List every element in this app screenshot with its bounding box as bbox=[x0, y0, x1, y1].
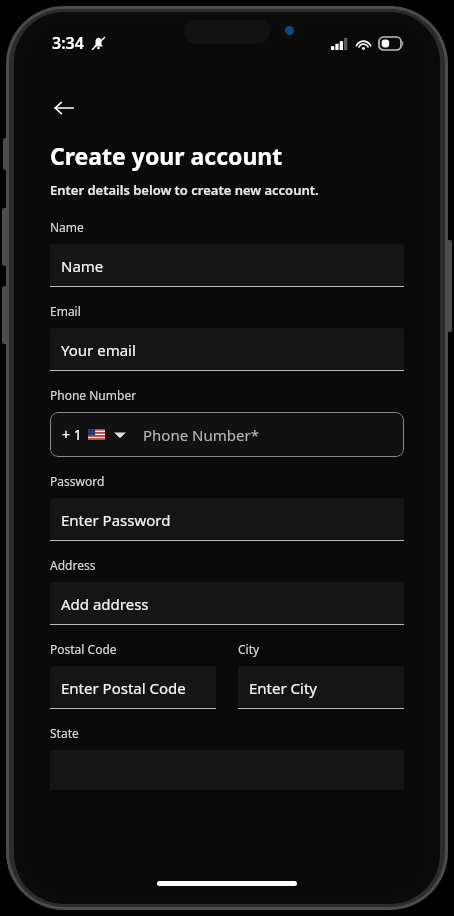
staticText: Password bbox=[50, 473, 105, 489]
staticText: Postal Code bbox=[50, 641, 117, 657]
staticText: Enter details below to create new accoun… bbox=[50, 181, 319, 199]
staticText: Your email bbox=[61, 340, 136, 360]
staticText: Add address bbox=[61, 594, 149, 614]
staticText: Address bbox=[50, 557, 96, 573]
staticText: Phone Number bbox=[50, 387, 137, 403]
button[interactable]: Back bbox=[42, 86, 86, 130]
staticText: Name bbox=[61, 256, 104, 276]
staticText: Phone Number* bbox=[143, 425, 259, 445]
staticText: 3:34 bbox=[52, 32, 84, 54]
button[interactable]: Name bbox=[50, 244, 404, 287]
button[interactable]: Enter Postal Code bbox=[50, 666, 216, 709]
staticText: Enter City bbox=[249, 678, 317, 698]
button[interactable]: Add address bbox=[50, 582, 404, 625]
button[interactable]: Your email bbox=[50, 328, 404, 371]
staticText: Enter Password bbox=[61, 510, 171, 530]
button[interactable]: Enter City bbox=[238, 666, 404, 709]
staticText: Enter Postal Code bbox=[61, 678, 186, 698]
staticText: + 1 bbox=[62, 425, 82, 444]
staticText: State bbox=[50, 725, 79, 741]
button[interactable]: Enter Password bbox=[50, 498, 404, 541]
staticText: Name bbox=[50, 219, 84, 235]
button[interactable]: + 1 bbox=[50, 412, 404, 457]
staticText: Create your account bbox=[50, 140, 283, 171]
staticText: City bbox=[238, 641, 260, 657]
staticText: Email bbox=[50, 303, 81, 319]
